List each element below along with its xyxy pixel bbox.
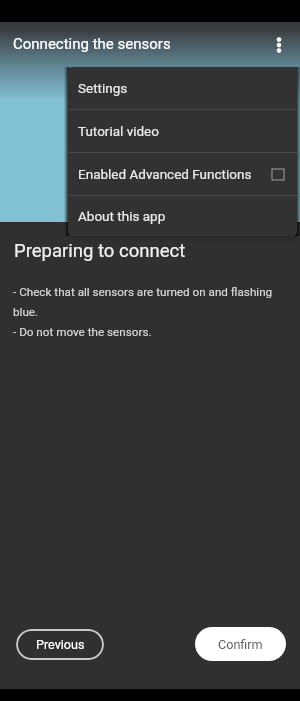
staticText: Enabled Advanced Functions (78, 166, 252, 182)
staticText: About this app (78, 208, 166, 224)
staticText: Tutorial video (78, 123, 159, 139)
button[interactable]: Confirm (195, 627, 286, 661)
staticText: Connecting the sensors (13, 35, 171, 53)
staticText: - Check that all sensors are turned on a… (13, 285, 294, 338)
staticText: Confirm (218, 637, 263, 652)
button[interactable]: More options (258, 23, 300, 65)
staticText: Previous (36, 637, 85, 652)
staticText: Settings (78, 80, 128, 96)
button[interactable]: Enabled Advanced Functions (68, 153, 297, 195)
staticText: Preparing to connect (14, 240, 186, 262)
button[interactable]: Previous (16, 629, 104, 660)
button[interactable]: About this app (68, 196, 297, 236)
button[interactable]: Settings (68, 67, 297, 109)
button[interactable]: Tutorial video (68, 110, 297, 152)
